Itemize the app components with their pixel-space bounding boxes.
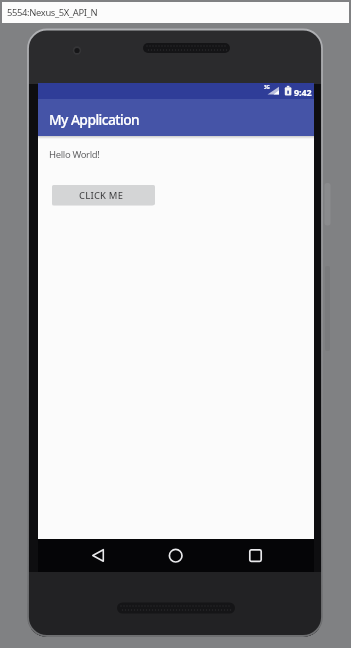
button[interactable] [155, 539, 195, 572]
staticText: Hello World! [49, 148, 100, 161]
button[interactable] [235, 539, 275, 572]
button[interactable] [78, 539, 118, 572]
button[interactable]: CLICK ME [52, 185, 155, 205]
button[interactable]: My Application [38, 99, 314, 136]
button[interactable]: 5554:Nexus_5X_API_N [2, 2, 349, 23]
staticText: 9:42 [294, 86, 312, 98]
staticText: My Application [49, 110, 140, 129]
staticText: 5554:Nexus_5X_API_N [7, 6, 98, 19]
staticText: CLICK ME [79, 189, 124, 202]
staticText: 3G [264, 84, 270, 90]
